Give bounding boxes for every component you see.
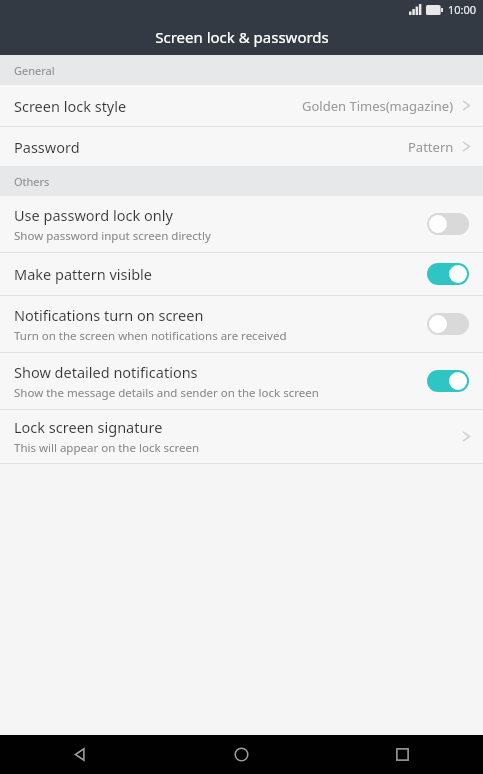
- staticText: Password: [14, 137, 80, 157]
- staticText: Use password lock only: [14, 205, 173, 225]
- button[interactable]: Home: [161, 735, 322, 774]
- button[interactable]: Screen lock style: [0, 85, 483, 126]
- staticText: Lock screen signature: [14, 417, 163, 437]
- staticText: 10:00: [448, 2, 477, 17]
- staticText: Turn on the screen when notifications ar…: [14, 328, 287, 344]
- staticText: This will appear on the lock screen: [14, 440, 200, 456]
- button[interactable]: Make pattern visible: [0, 253, 483, 295]
- staticText: Screen lock & passwords: [155, 27, 329, 47]
- button[interactable]: Show detailed notifications: [0, 353, 483, 409]
- staticText: Pattern: [408, 138, 454, 156]
- button[interactable]: Recent apps: [322, 735, 483, 774]
- staticText: Screen lock style: [14, 96, 127, 116]
- staticText: General: [14, 63, 55, 78]
- button[interactable]: Lock screen signature: [0, 410, 483, 463]
- staticText: Notifications turn on screen: [14, 305, 204, 325]
- staticText: Show password input screen directly: [14, 228, 211, 244]
- staticText: Golden Times(magazine): [302, 97, 454, 115]
- staticText: Others: [14, 174, 50, 189]
- staticText: Show the message details and sender on t…: [14, 385, 319, 401]
- staticText: Make pattern visible: [14, 264, 153, 284]
- button[interactable]: Use password lock only: [0, 196, 483, 252]
- staticText: Show detailed notifications: [14, 362, 198, 382]
- button[interactable]: Notifications turn on screen: [0, 296, 483, 352]
- button[interactable]: Password: [0, 127, 483, 166]
- button[interactable]: Back: [0, 735, 161, 774]
